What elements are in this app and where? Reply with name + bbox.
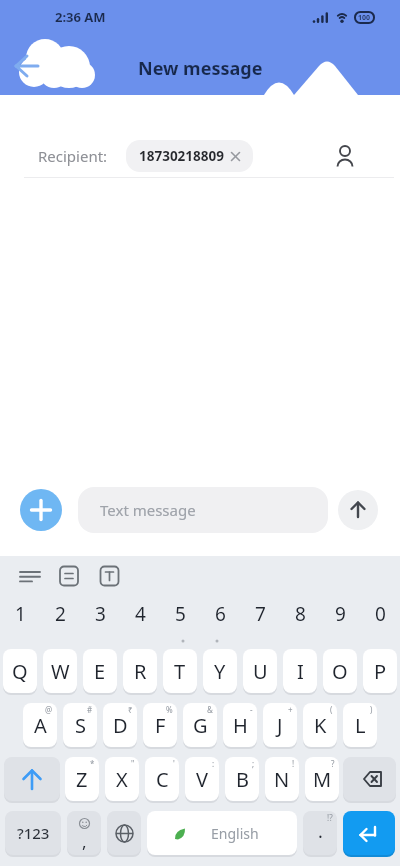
button[interactable]: F [143, 703, 177, 749]
button[interactable] [8, 48, 48, 88]
staticText: A [34, 712, 47, 739]
button[interactable]: T [163, 649, 197, 695]
button[interactable] [323, 135, 367, 177]
button[interactable]: S [63, 703, 97, 749]
staticText: B [236, 766, 249, 793]
staticText: % [166, 704, 173, 715]
staticText: ; [252, 758, 255, 769]
button[interactable]: J [263, 703, 297, 749]
staticText: I [297, 658, 304, 685]
staticText: V [196, 766, 208, 793]
staticText: # [87, 704, 93, 715]
button[interactable] [50, 556, 90, 592]
staticText: " [131, 758, 135, 769]
button[interactable]: A [23, 703, 57, 749]
staticText: J [277, 712, 283, 739]
button[interactable]: C [145, 757, 179, 803]
staticText: M [313, 766, 332, 793]
button[interactable]: 6 [200, 592, 240, 636]
button[interactable]: Text message [78, 487, 328, 533]
staticText: ' [173, 758, 175, 769]
staticText: ? [331, 758, 335, 769]
staticText: ) [370, 704, 373, 715]
button[interactable] [107, 811, 141, 857]
button[interactable]: 8 [280, 592, 320, 636]
button[interactable]: 0 [360, 592, 400, 636]
button[interactable] [343, 811, 395, 857]
button[interactable]: V [185, 757, 219, 803]
staticText: Q [12, 658, 28, 685]
button[interactable]: 5 [160, 592, 200, 636]
button[interactable]: W [43, 649, 77, 695]
button[interactable]: 9 [320, 592, 360, 636]
staticText: 100 [358, 13, 371, 23]
button[interactable]: H [223, 703, 257, 749]
button[interactable]: 1 [0, 592, 40, 636]
button[interactable]: G [183, 703, 217, 749]
button[interactable] [343, 757, 396, 803]
staticText: N [274, 766, 290, 793]
staticText: F [155, 712, 166, 739]
button[interactable]: 18730218809 [126, 140, 253, 172]
staticText: 9 [335, 601, 346, 627]
button[interactable] [90, 556, 130, 592]
button[interactable]: O [323, 649, 357, 695]
button[interactable]: Y [203, 649, 237, 695]
staticText: Recipient: [38, 146, 108, 166]
button[interactable]: ?123 [5, 811, 61, 857]
button[interactable]: N [265, 757, 299, 803]
staticText: 7 [255, 601, 266, 627]
button[interactable] [4, 757, 60, 803]
staticText: X [116, 766, 128, 793]
button[interactable]: M [305, 757, 339, 803]
staticText: H [233, 712, 248, 739]
staticText: U [253, 658, 268, 685]
staticText: @ [45, 704, 53, 715]
button[interactable]: 2 [40, 592, 80, 636]
button[interactable] [338, 490, 378, 530]
staticText: Y [214, 658, 226, 685]
staticText: ! [292, 758, 295, 769]
button[interactable]: Q [3, 649, 37, 695]
button[interactable]: English [147, 811, 297, 857]
staticText: R [134, 658, 147, 685]
button[interactable]: D [103, 703, 137, 749]
staticText: W [51, 658, 70, 685]
button[interactable]: . [303, 811, 337, 857]
button[interactable]: R [123, 649, 157, 695]
button[interactable]: , [67, 811, 101, 857]
button[interactable]: X [105, 757, 139, 803]
button[interactable]: B [225, 757, 259, 803]
button[interactable]: L [343, 703, 377, 749]
staticText: 3 [95, 601, 106, 627]
button[interactable]: P [363, 649, 397, 695]
staticText: 18730218809 [139, 147, 224, 165]
staticText: * [90, 758, 95, 769]
staticText: , [82, 830, 87, 853]
button[interactable]: 4 [120, 592, 160, 636]
staticText: 6 [215, 601, 226, 627]
button[interactable] [10, 556, 50, 592]
button[interactable]: Z [65, 757, 99, 803]
button[interactable]: U [243, 649, 277, 695]
button[interactable]: I [283, 649, 317, 695]
staticText: English [211, 824, 259, 843]
staticText: P [374, 658, 387, 685]
button[interactable]: K [303, 703, 337, 749]
staticText: 2:36 AM [55, 8, 106, 26]
button[interactable]: 3 [80, 592, 120, 636]
button[interactable]: 7 [240, 592, 280, 636]
button[interactable] [20, 489, 62, 531]
staticText: New message [138, 56, 263, 81]
staticText: K [314, 712, 327, 739]
staticText: . [318, 819, 323, 844]
staticText: Text message [100, 500, 196, 520]
staticText: Z [76, 766, 88, 793]
staticText: T [174, 658, 186, 685]
staticText: 2 [55, 601, 66, 627]
staticText: + [288, 704, 293, 715]
staticText: 8 [295, 601, 306, 627]
button[interactable]: E [83, 649, 117, 695]
staticText: ?123 [17, 823, 50, 843]
staticText: !? [327, 812, 333, 823]
